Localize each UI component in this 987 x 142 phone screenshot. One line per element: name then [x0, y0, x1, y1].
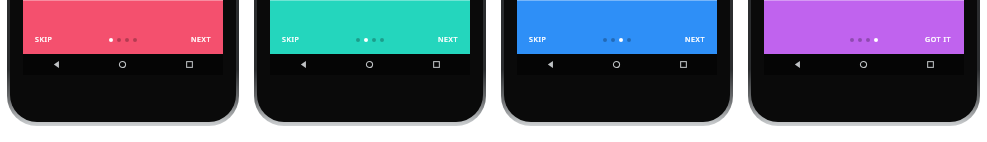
button[interactable]: SKIP	[23, 29, 65, 51]
staticText: SKIP	[35, 35, 53, 45]
staticText: SKIP	[282, 35, 300, 45]
button[interactable]: SKIP	[270, 29, 312, 51]
button[interactable]: NEXT	[426, 29, 470, 51]
button[interactable]: Home	[89, 54, 156, 75]
button[interactable]: Recent apps	[156, 54, 223, 75]
button[interactable]: Recent apps	[897, 54, 964, 75]
button[interactable]: NEXT	[179, 29, 223, 51]
button[interactable]: Recent apps	[650, 54, 717, 75]
button[interactable]: Back	[517, 54, 583, 75]
staticText: NEXT	[438, 35, 458, 45]
button[interactable]: Back	[764, 54, 830, 75]
button[interactable]: Home	[830, 54, 897, 75]
button[interactable]: NEXT	[673, 29, 717, 51]
staticText: GOT IT	[925, 35, 952, 45]
staticText: NEXT	[191, 35, 211, 45]
button[interactable]: Recent apps	[403, 54, 470, 75]
button[interactable]: Home	[583, 54, 650, 75]
button[interactable]: Home	[336, 54, 403, 75]
button[interactable]: SKIP	[517, 29, 559, 51]
button[interactable]: GOT IT	[913, 29, 964, 51]
button[interactable]: Back	[23, 54, 89, 75]
button[interactable]: Back	[270, 54, 336, 75]
staticText: NEXT	[685, 35, 705, 45]
staticText: SKIP	[529, 35, 547, 45]
